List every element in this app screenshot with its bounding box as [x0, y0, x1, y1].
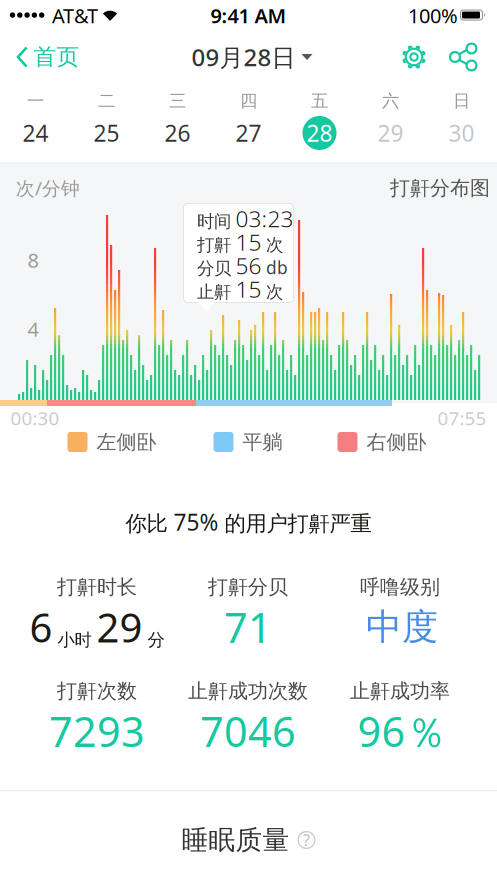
- staticText: 二: [98, 90, 115, 112]
- staticText: 15: [235, 227, 261, 257]
- button[interactable]: 26: [155, 111, 199, 155]
- staticText: 时间: [197, 211, 231, 232]
- staticText: 左侧卧: [96, 430, 156, 454]
- button[interactable]: 25: [84, 111, 128, 155]
- staticText: 六: [382, 90, 399, 112]
- staticText: 打鼾分贝: [208, 575, 288, 599]
- staticText: 五: [311, 90, 328, 112]
- button[interactable]: Help: [297, 829, 315, 851]
- staticText: 26: [164, 118, 190, 148]
- staticText: 07:55: [437, 406, 486, 430]
- staticText: 6 小时 29 分: [29, 600, 164, 653]
- staticText: 29: [377, 118, 403, 148]
- staticText: db: [266, 256, 288, 279]
- staticText: 100%: [408, 2, 458, 29]
- staticText: 平躺: [242, 430, 282, 454]
- button[interactable]: 首页: [16, 43, 79, 71]
- staticText: 打鼾时长: [57, 575, 137, 599]
- button[interactable]: 29: [368, 111, 412, 155]
- staticText: 一: [27, 90, 44, 112]
- button[interactable]: 28: [297, 111, 341, 155]
- staticText: 27: [235, 118, 261, 148]
- staticText: AT&T: [52, 2, 98, 29]
- staticText: 止鼾成功次数: [188, 679, 308, 703]
- staticText: 56: [235, 250, 261, 280]
- staticText: 分贝: [197, 258, 231, 279]
- button[interactable]: 24: [13, 111, 57, 155]
- staticText: 30: [448, 118, 474, 148]
- button[interactable]: 27: [226, 111, 270, 155]
- staticText: 00:30: [10, 406, 59, 430]
- staticText: 7046: [200, 704, 296, 758]
- button[interactable]: 30: [439, 111, 483, 155]
- staticText: 96％: [357, 703, 446, 758]
- staticText: 中度: [366, 605, 438, 649]
- staticText: 8: [27, 247, 38, 273]
- staticText: 71: [224, 600, 272, 654]
- button[interactable]: Settings: [400, 43, 428, 71]
- staticText: 24: [22, 118, 48, 148]
- staticText: 25: [93, 118, 119, 148]
- staticText: ?: [303, 829, 310, 851]
- staticText: 打鼾次数: [57, 679, 137, 703]
- staticText: 28: [306, 118, 332, 148]
- staticText: 三: [169, 90, 186, 112]
- staticText: 7293: [49, 704, 145, 758]
- staticText: 9:41 AM: [210, 2, 286, 29]
- staticText: 四: [240, 90, 257, 112]
- staticText: 15: [235, 274, 261, 304]
- button[interactable]: 09月28日: [191, 41, 312, 73]
- staticText: 日: [453, 90, 470, 112]
- staticText: 首页: [33, 43, 79, 71]
- staticText: 打鼾分布图: [390, 176, 490, 200]
- staticText: 你比 75% 的用户打鼾严重: [125, 507, 371, 537]
- staticText: 呼噜级别: [360, 575, 440, 599]
- staticText: 09月28日: [191, 41, 295, 73]
- staticText: 打鼾: [197, 234, 231, 256]
- staticText: 止鼾: [197, 281, 231, 303]
- staticText: 03:23: [235, 203, 293, 233]
- button[interactable]: Share: [449, 42, 477, 71]
- staticText: 睡眠质量: [181, 824, 289, 856]
- staticText: 次: [266, 281, 283, 303]
- staticText: 次: [266, 234, 283, 256]
- staticText: 右侧卧: [366, 430, 426, 454]
- staticText: 止鼾成功率: [350, 679, 450, 703]
- staticText: 次/分钟: [16, 176, 80, 200]
- staticText: 4: [27, 316, 38, 342]
